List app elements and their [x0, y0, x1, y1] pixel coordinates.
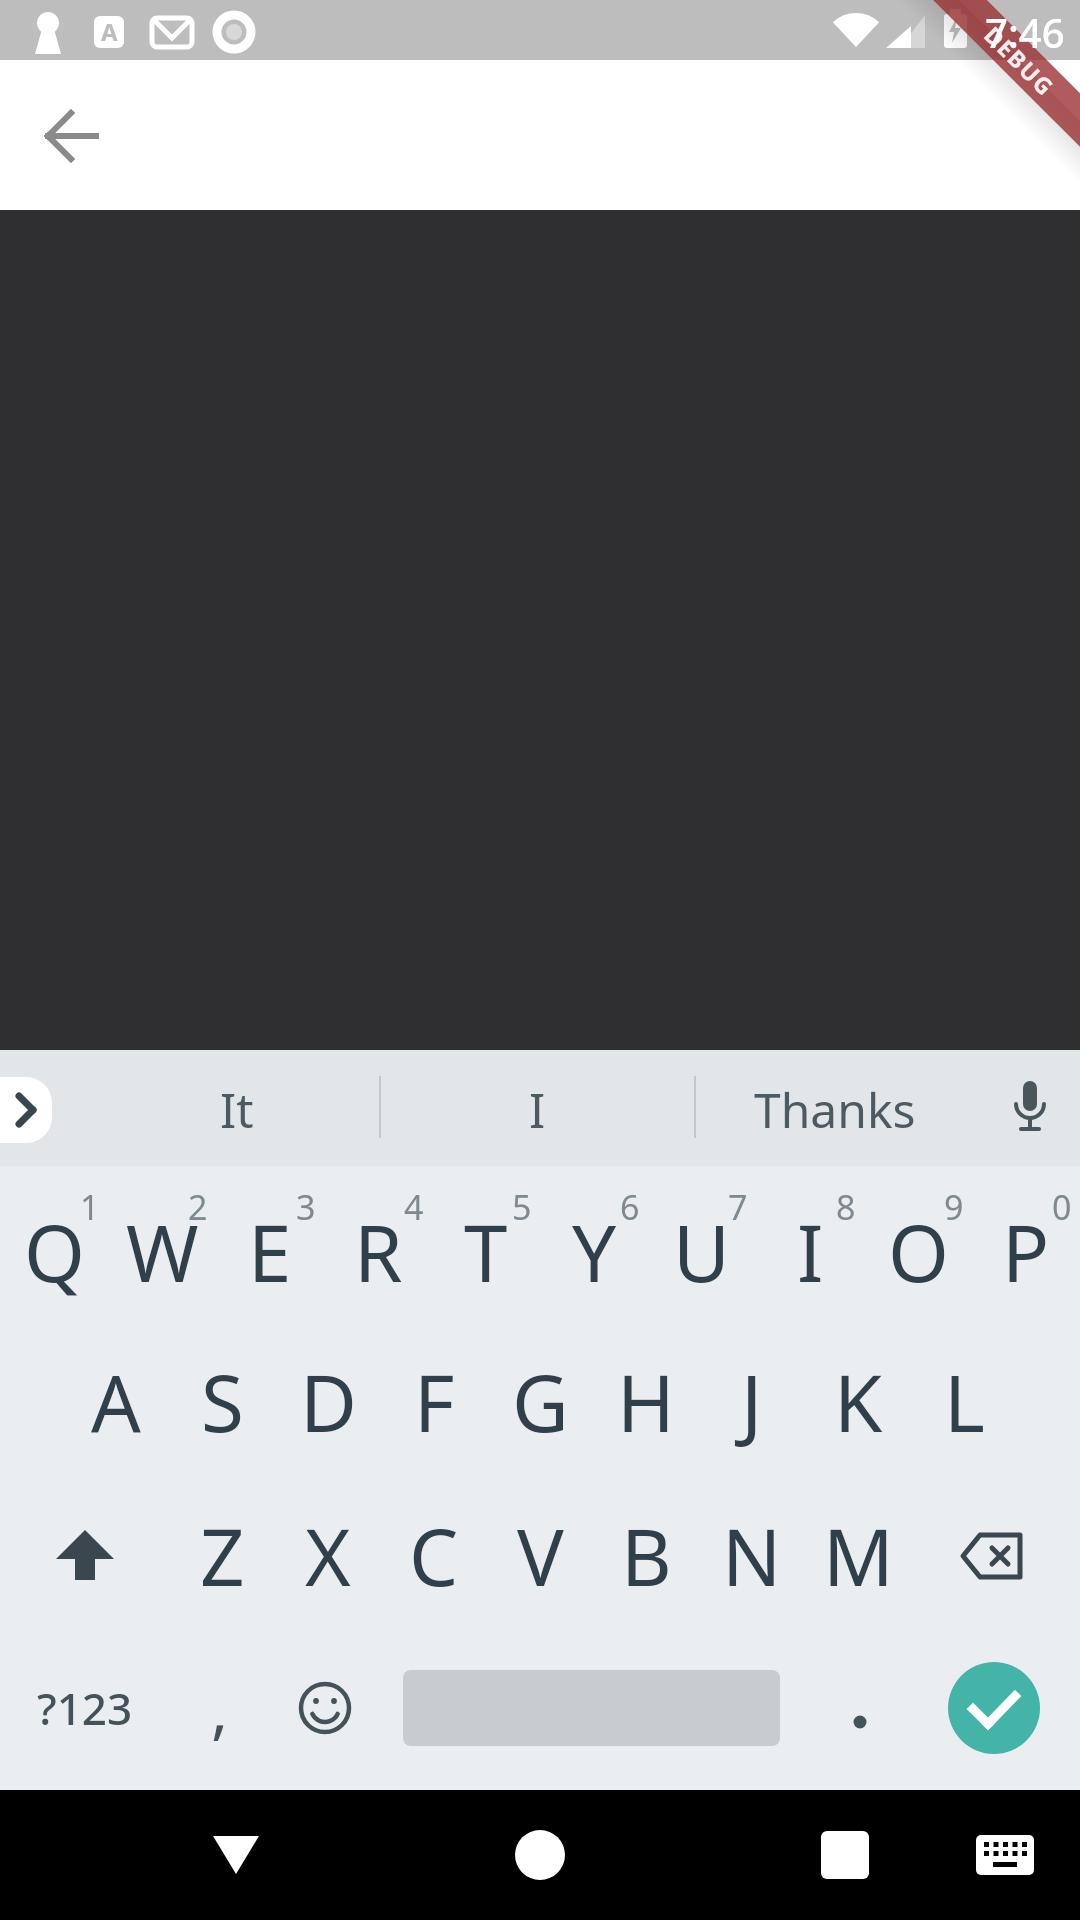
button[interactable]	[928, 1486, 1058, 1626]
button[interactable]: Thanks	[695, 1053, 975, 1165]
staticText: F	[414, 1349, 455, 1455]
staticText: 1	[80, 1184, 100, 1228]
staticText: Y	[572, 1199, 617, 1305]
staticText: Q	[24, 1199, 85, 1305]
staticText: 2	[188, 1184, 208, 1228]
button[interactable]: Z	[168, 1481, 276, 1631]
staticText: 7:46	[985, 5, 1065, 55]
staticText: 0	[1052, 1184, 1072, 1228]
staticText: U	[673, 1199, 731, 1305]
button[interactable]: X	[274, 1481, 382, 1631]
button[interactable]	[980, 1058, 1080, 1158]
staticText: 8	[836, 1184, 856, 1228]
staticText: C	[409, 1503, 459, 1609]
button[interactable]: ,	[175, 1633, 265, 1783]
button[interactable]: W	[108, 1177, 216, 1327]
staticText: E	[248, 1199, 292, 1305]
staticText: I	[797, 1199, 824, 1305]
staticText: N	[722, 1503, 782, 1609]
button[interactable]	[948, 1662, 1040, 1754]
staticText: W	[126, 1199, 199, 1305]
staticText: A	[101, 15, 118, 48]
button[interactable]: S	[168, 1327, 276, 1477]
button[interactable]	[24, 88, 120, 184]
button[interactable]: C	[380, 1481, 488, 1631]
button[interactable]: E	[216, 1177, 324, 1327]
button[interactable]	[815, 1633, 905, 1783]
staticText: O	[888, 1199, 949, 1305]
staticText: M	[823, 1503, 894, 1609]
button[interactable]: O	[864, 1177, 972, 1327]
button[interactable]: L	[910, 1327, 1018, 1477]
staticText: 6	[620, 1184, 640, 1228]
staticText: ,	[211, 1665, 229, 1752]
button[interactable]	[0, 1077, 52, 1143]
button[interactable]	[945, 1795, 1065, 1915]
button[interactable]: U	[648, 1177, 756, 1327]
button[interactable]: R	[324, 1177, 432, 1327]
button[interactable]: Y	[540, 1177, 648, 1327]
button[interactable]: K	[804, 1327, 912, 1477]
button[interactable]: F	[380, 1327, 488, 1477]
staticText: T	[464, 1199, 508, 1305]
button[interactable]: N	[698, 1481, 806, 1631]
button[interactable]: D	[274, 1327, 382, 1477]
staticText: Thanks	[754, 1077, 916, 1142]
button[interactable]: B	[592, 1481, 700, 1631]
staticText: B	[621, 1503, 672, 1609]
staticText: 3	[296, 1184, 316, 1228]
staticText: H	[617, 1349, 675, 1455]
staticText: DEBUG	[978, 19, 1062, 102]
button[interactable]: I	[756, 1177, 864, 1327]
button[interactable]: I	[397, 1053, 677, 1165]
button[interactable]: G	[486, 1327, 594, 1477]
staticText: G	[512, 1349, 569, 1455]
button[interactable]: Q	[0, 1177, 108, 1327]
staticText: K	[834, 1349, 883, 1455]
staticText: V	[517, 1503, 564, 1609]
button[interactable]	[775, 1795, 915, 1915]
staticText: 4	[404, 1184, 424, 1228]
staticText: X	[305, 1503, 351, 1609]
button[interactable]: T	[432, 1177, 540, 1327]
button[interactable]	[166, 1795, 306, 1915]
staticText: Z	[200, 1503, 245, 1609]
staticText: P	[1002, 1199, 1050, 1305]
button[interactable]	[470, 1795, 610, 1915]
staticText: 9	[944, 1184, 964, 1228]
staticText: It	[220, 1077, 254, 1142]
button[interactable]: M	[804, 1481, 912, 1631]
button[interactable]: P	[972, 1177, 1080, 1327]
staticText: S	[201, 1349, 244, 1455]
button[interactable]: J	[698, 1327, 806, 1477]
staticText: I	[529, 1077, 546, 1142]
staticText: ?123	[37, 1678, 133, 1738]
staticText: J	[741, 1349, 763, 1455]
staticText: R	[354, 1199, 403, 1305]
button[interactable]: V	[486, 1481, 594, 1631]
button[interactable]	[270, 1633, 380, 1783]
staticText: D	[300, 1349, 357, 1455]
button[interactable]: It	[97, 1053, 377, 1165]
staticText: 5	[512, 1184, 532, 1228]
staticText: L	[944, 1349, 985, 1455]
staticText: A	[91, 1349, 141, 1455]
button[interactable]	[20, 1486, 150, 1626]
button[interactable]: ?123	[10, 1633, 160, 1783]
button[interactable]: A	[62, 1327, 170, 1477]
staticText: 7	[728, 1184, 748, 1228]
button[interactable]: H	[592, 1327, 700, 1477]
